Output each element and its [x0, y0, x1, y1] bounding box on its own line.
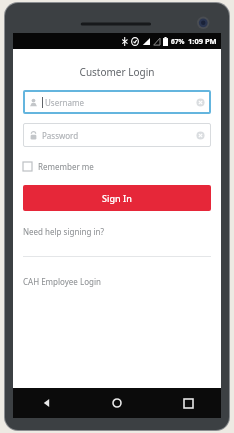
staticText: Sign In — [102, 192, 132, 204]
button[interactable]: Remember me — [23, 159, 94, 174]
button[interactable]: Recent apps — [175, 390, 201, 416]
other: Username — [29, 98, 38, 107]
button[interactable]: Home — [104, 390, 130, 416]
button[interactable]: CAH Employee Login — [23, 275, 101, 288]
button[interactable]: Password — [23, 123, 211, 147]
staticText: Password — [42, 130, 196, 141]
staticText: Customer Login — [23, 65, 211, 79]
button[interactable]: Clear — [196, 98, 205, 107]
other: Password — [29, 131, 38, 140]
button[interactable]: Clear — [196, 131, 205, 140]
button[interactable]: Username — [23, 90, 211, 114]
button[interactable]: Sign In — [23, 185, 211, 211]
staticText: 1:09 PM — [188, 36, 217, 46]
staticText: Username — [45, 97, 196, 108]
staticText: 67% — [171, 37, 185, 46]
button[interactable]: Need help signing in? — [23, 225, 104, 238]
staticText: Remember me — [38, 161, 94, 172]
button[interactable]: Back — [33, 390, 59, 416]
